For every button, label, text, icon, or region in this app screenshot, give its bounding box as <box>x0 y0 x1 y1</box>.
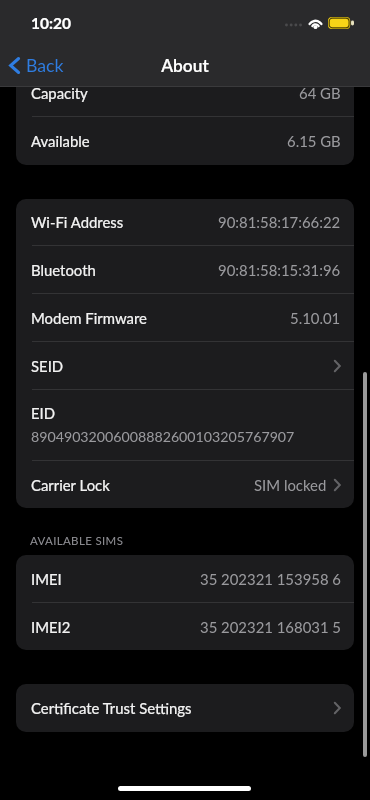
staticText: 5.10.01 <box>290 309 341 327</box>
staticText: SEID <box>31 357 64 375</box>
staticText: 89049032006008882600103205767907 <box>31 428 295 445</box>
staticText: 90:81:58:15:31:96 <box>218 261 341 279</box>
button[interactable]: Back <box>0 49 74 82</box>
staticText: 35 202321 153958 6 <box>200 570 341 588</box>
staticText: SIM locked <box>254 476 327 494</box>
staticText: Modem Firmware <box>31 309 147 327</box>
staticText: 10:20 <box>31 14 71 33</box>
staticText: 90:81:58:17:66:22 <box>218 213 341 231</box>
button[interactable]: Capacity <box>16 70 354 116</box>
staticText: EID <box>31 404 56 422</box>
staticText: IMEI <box>31 570 62 588</box>
button[interactable]: Certificate Trust Settings <box>16 684 354 732</box>
button[interactable]: Modem Firmware <box>16 294 354 341</box>
staticText: 35 202321 168031 5 <box>200 618 341 636</box>
staticText: Capacity <box>31 84 88 102</box>
staticText: AVAILABLE SIMS <box>30 534 124 548</box>
button[interactable]: EID <box>16 390 354 460</box>
staticText: IMEI2 <box>31 618 71 636</box>
button[interactable]: Bluetooth <box>16 246 354 293</box>
staticText: Back <box>26 55 64 76</box>
staticText: Carrier Lock <box>31 476 110 494</box>
staticText: Wi-Fi Address <box>31 213 124 231</box>
button[interactable]: Carrier Lock <box>16 461 354 508</box>
button[interactable]: IMEI <box>16 555 354 602</box>
staticText: Certificate Trust Settings <box>31 699 192 717</box>
button[interactable]: IMEI2 <box>16 603 354 650</box>
staticText: Available <box>31 132 90 150</box>
button[interactable]: Available <box>16 117 354 165</box>
button[interactable]: Wi-Fi Address <box>16 199 354 245</box>
staticText: Bluetooth <box>31 261 96 279</box>
button[interactable]: SEID <box>16 342 354 389</box>
staticText: 6.15 GB <box>287 132 341 150</box>
staticText: 64 GB <box>299 84 341 102</box>
staticText: About <box>161 55 209 76</box>
